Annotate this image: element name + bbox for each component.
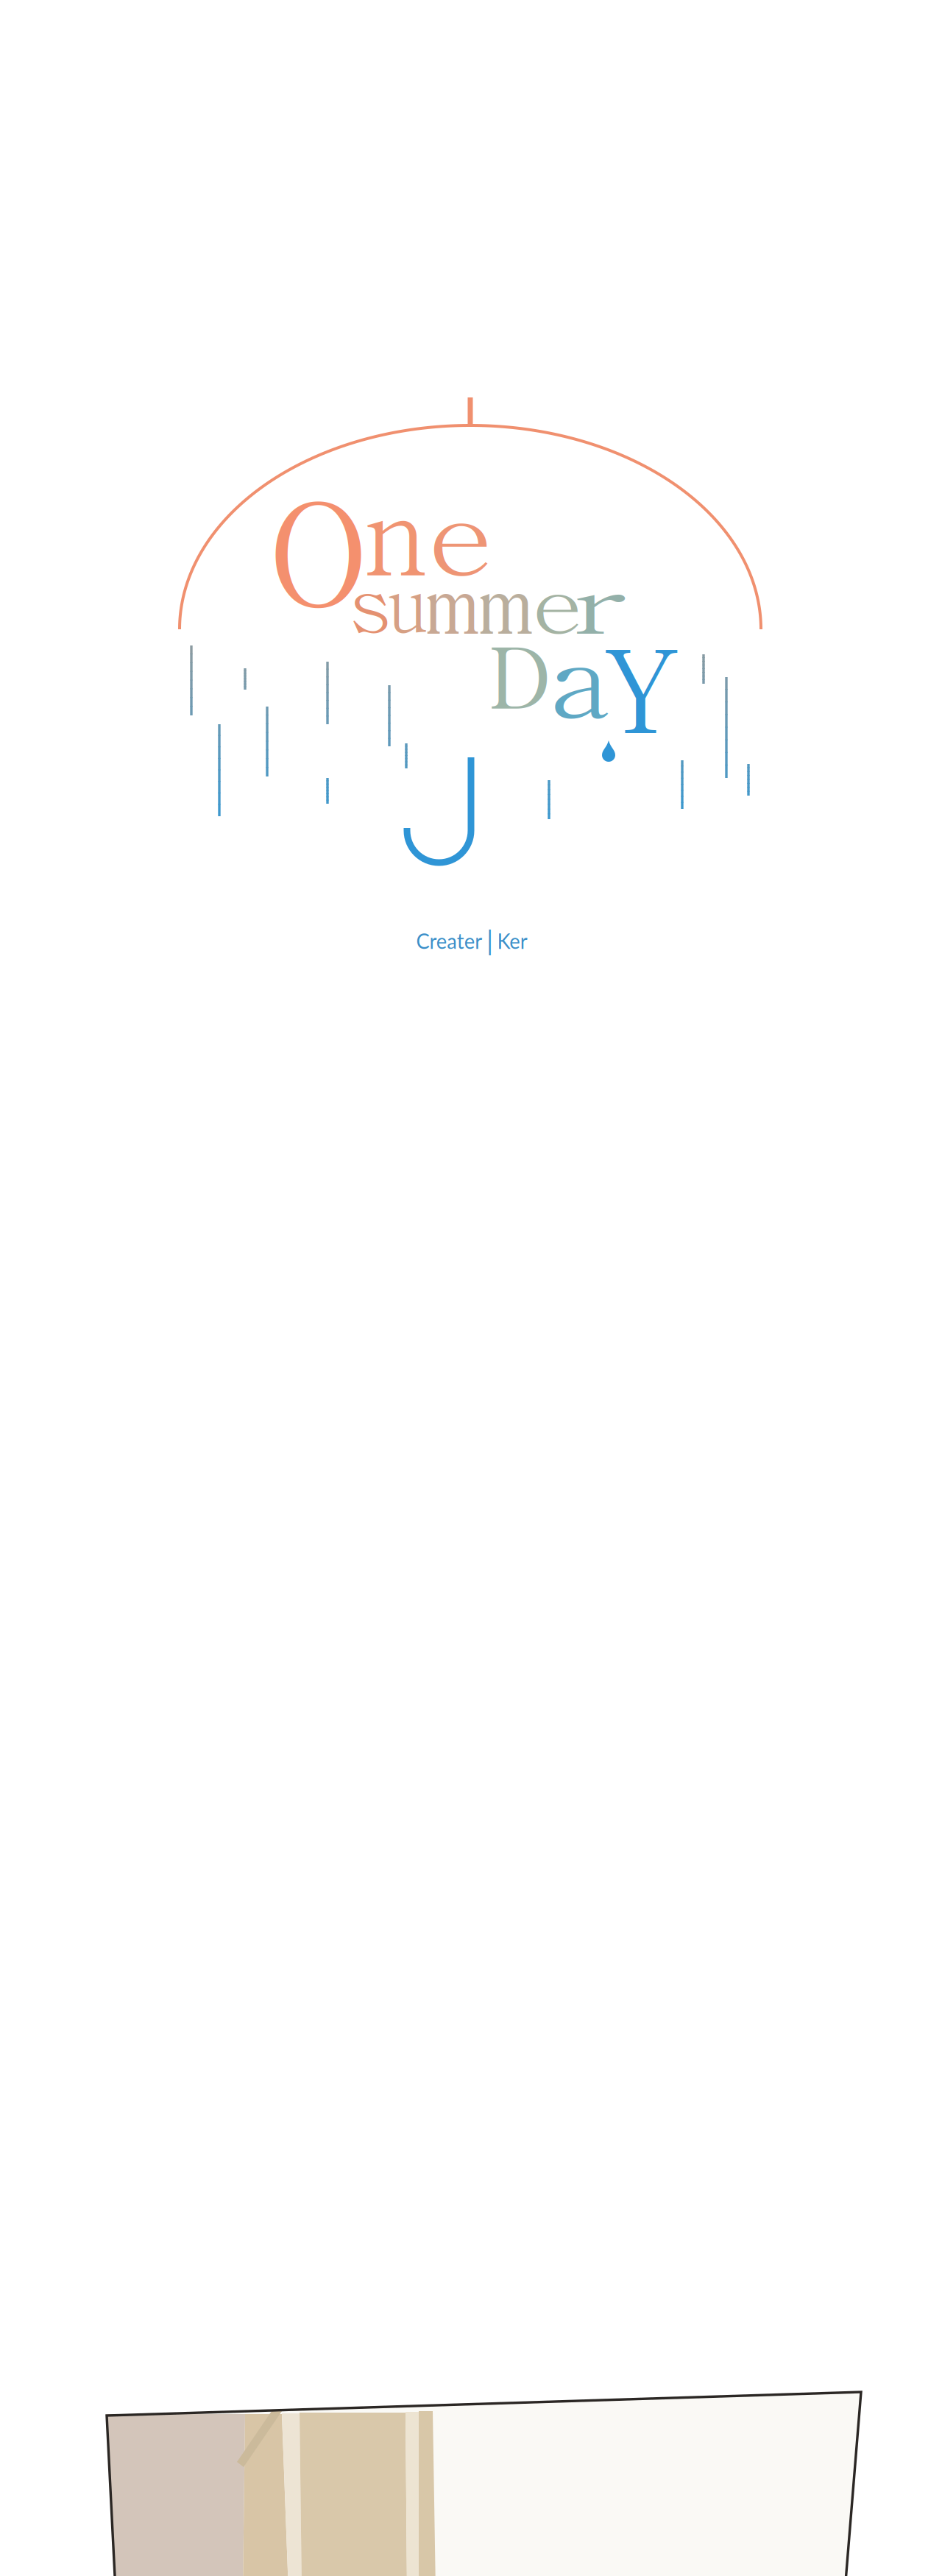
- staticText: m: [486, 542, 527, 657]
- staticText: r: [584, 544, 623, 656]
- staticText: |: [491, 921, 499, 961]
- staticText: Ker: [505, 925, 545, 957]
- staticText: u: [388, 543, 427, 654]
- staticText: a: [553, 603, 604, 746]
- staticText: D: [499, 613, 541, 732]
- button[interactable]: Creater: [399, 921, 545, 961]
- staticText: Creater: [399, 925, 485, 957]
- staticText: s: [351, 543, 390, 654]
- staticText: Y: [613, 602, 672, 766]
- staticText: O: [283, 446, 354, 646]
- staticText: n: [368, 449, 424, 607]
- staticText: m: [433, 542, 473, 657]
- staticText: e: [433, 456, 486, 604]
- staticText: e: [537, 544, 576, 655]
